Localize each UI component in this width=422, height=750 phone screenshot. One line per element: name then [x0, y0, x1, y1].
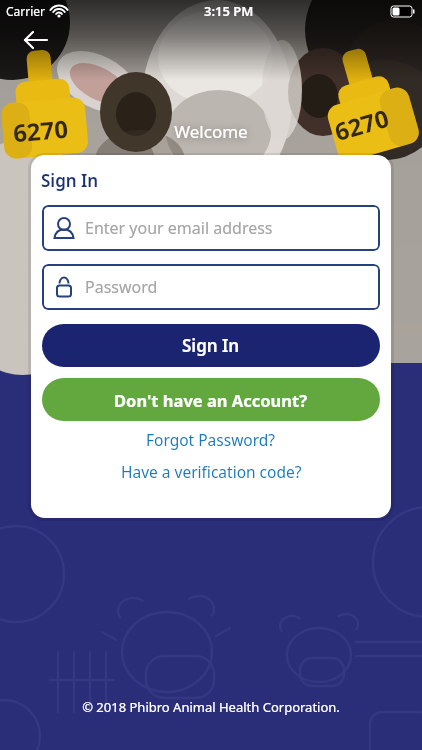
staticText: Password: [85, 276, 158, 298]
staticText: 6270: [330, 101, 392, 148]
staticText: Have a verification code?: [121, 461, 302, 482]
staticText: 3:15 PM: [204, 2, 254, 20]
button[interactable]: [16, 24, 56, 56]
staticText: Welcome: [0, 120, 422, 143]
staticText: © 2018 Phibro Animal Health Corporation.: [0, 698, 422, 716]
staticText: Don't have an Account?: [114, 389, 308, 411]
button[interactable]: Enter your email address: [42, 205, 380, 251]
button[interactable]: Have a verification code?: [31, 460, 391, 482]
staticText: Sign In: [182, 334, 240, 357]
staticText: Forgot Password?: [146, 429, 276, 450]
staticText: Carrier: [6, 3, 46, 19]
button[interactable]: Password: [42, 264, 380, 310]
button[interactable]: Don't have an Account?: [42, 378, 380, 421]
staticText: Sign In: [41, 169, 99, 192]
staticText: Enter your email address: [85, 217, 273, 239]
button[interactable]: Sign In: [42, 324, 380, 367]
staticText: 6270: [12, 112, 69, 149]
button[interactable]: Forgot Password?: [31, 428, 391, 450]
